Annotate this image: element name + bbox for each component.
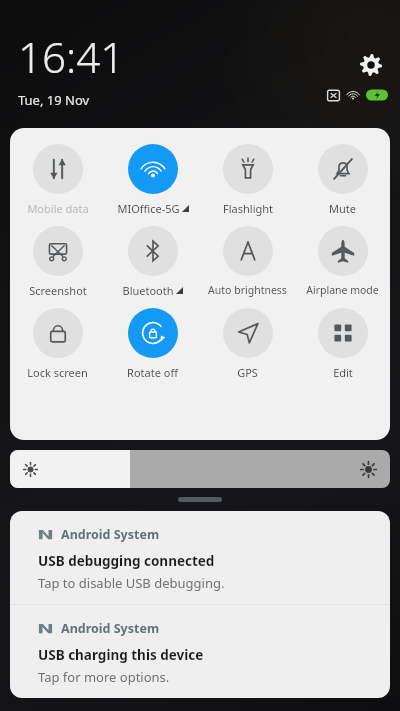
- staticText: Bluetooth: [122, 283, 174, 298]
- button[interactable]: [10, 450, 390, 488]
- button[interactable]: Screenshot: [10, 226, 105, 298]
- staticText: GPS: [237, 365, 258, 380]
- button[interactable]: GPS: [200, 308, 295, 380]
- button[interactable]: Edit: [295, 308, 390, 380]
- staticText: MIOffice-5G: [117, 201, 180, 216]
- button[interactable]: Settings: [356, 50, 386, 80]
- button[interactable]: Rotate off: [105, 308, 200, 380]
- staticText: Mute: [329, 201, 356, 216]
- button[interactable]: MIOffice-5G: [105, 144, 200, 216]
- staticText: Android System: [61, 620, 160, 637]
- staticText: Auto brightness: [208, 283, 287, 297]
- button[interactable]: Mobile data: [10, 144, 105, 216]
- button[interactable]: Android System: [10, 605, 390, 698]
- staticText: Airplane mode: [306, 283, 379, 297]
- button[interactable]: Flashlight: [200, 144, 295, 216]
- staticText: Screenshot: [29, 283, 87, 298]
- button[interactable]: Airplane mode: [295, 226, 390, 297]
- button[interactable]: Android System: [10, 511, 390, 604]
- staticText: USB debugging connected: [38, 552, 215, 570]
- staticText: Mobile data: [27, 201, 89, 216]
- staticText: Tap for more options.: [38, 668, 170, 686]
- button[interactable]: Bluetooth: [105, 226, 200, 298]
- staticText: Tap to disable USB debugging.: [38, 574, 225, 592]
- staticText: 16:41: [18, 28, 125, 85]
- staticText: Edit: [333, 365, 353, 380]
- staticText: Tue, 19 Nov: [18, 91, 90, 109]
- staticText: Rotate off: [127, 365, 178, 380]
- button[interactable]: Lock screen: [10, 308, 105, 380]
- staticText: Flashlight: [223, 201, 273, 216]
- staticText: Android System: [61, 526, 160, 543]
- staticText: USB charging this device: [38, 646, 204, 664]
- button[interactable]: Mute: [295, 144, 390, 216]
- staticText: Lock screen: [27, 365, 88, 380]
- button[interactable]: Auto brightness: [200, 226, 295, 297]
